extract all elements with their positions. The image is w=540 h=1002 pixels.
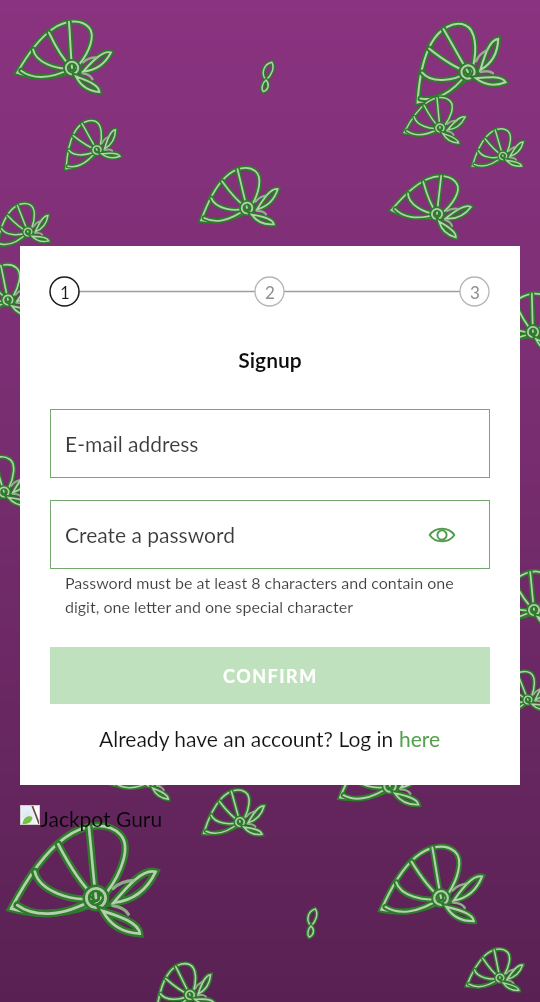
button[interactable]: CONFIRM xyxy=(50,647,490,704)
staticText: Jackpot Guru xyxy=(40,806,163,831)
button[interactable]: 3 xyxy=(460,277,489,306)
button[interactable]: Create a password xyxy=(50,500,490,569)
button[interactable]: Show password xyxy=(426,519,458,551)
button[interactable]: E-mail address xyxy=(50,409,490,478)
staticText: 1 xyxy=(60,282,70,302)
staticText: E-mail address xyxy=(65,431,199,456)
button[interactable]: 1 xyxy=(50,277,79,306)
staticText: CONFIRM xyxy=(223,665,318,687)
staticText: Password must be at least 8 characters a… xyxy=(65,573,490,616)
staticText: Create a password xyxy=(65,522,235,547)
staticText: Signup xyxy=(20,347,520,372)
button[interactable]: 2 xyxy=(255,277,284,306)
staticText: 2 xyxy=(265,282,275,302)
staticText: 3 xyxy=(470,282,480,302)
button[interactable]: here xyxy=(399,726,441,751)
staticText: Already have an account? Log in xyxy=(99,726,399,751)
